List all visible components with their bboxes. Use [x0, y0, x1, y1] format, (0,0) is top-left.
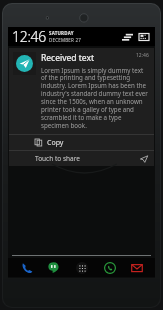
- button[interactable]: Touch to share: [9, 151, 154, 166]
- staticText: Lorem Ipsum is simply dummy text of the …: [41, 66, 149, 130]
- staticText: Copy: [47, 138, 64, 148]
- staticText: 12:46: [136, 52, 149, 59]
- staticText: DECEMBER 27: [49, 37, 81, 43]
- button[interactable]: Phone: [17, 258, 36, 277]
- staticText: 12:46: [12, 27, 46, 46]
- button[interactable]: Copy: [9, 135, 154, 150]
- staticText: Received text: [41, 52, 136, 64]
- button[interactable]: WhatsApp: [100, 258, 119, 277]
- button[interactable]: Gmail: [127, 258, 146, 277]
- button[interactable]: Apps: [72, 258, 91, 277]
- staticText: SATURDAY: [49, 30, 74, 36]
- staticText: Touch to share: [35, 154, 140, 163]
- button[interactable]: Received text: [9, 48, 154, 134]
- button[interactable]: Hangouts: [44, 258, 63, 277]
